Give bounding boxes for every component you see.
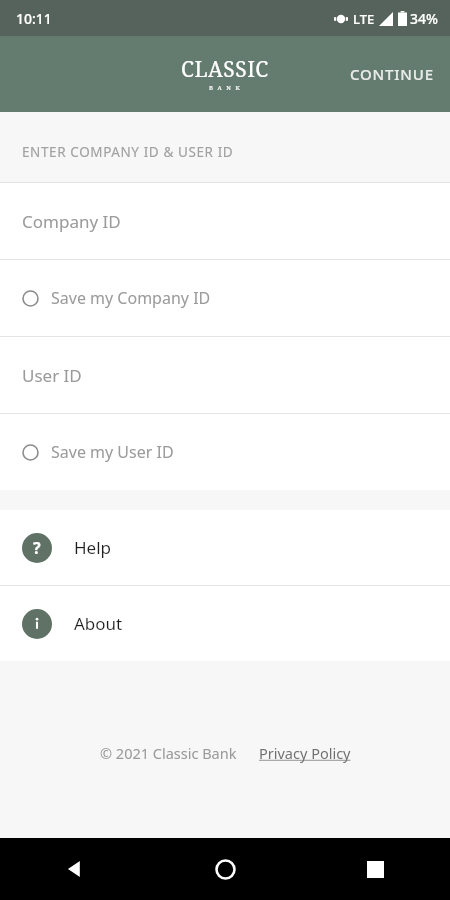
button[interactable]: Back bbox=[0, 838, 150, 900]
staticText: Save my User ID bbox=[51, 441, 174, 463]
button[interactable]: User ID bbox=[0, 337, 450, 413]
button[interactable]: Help bbox=[0, 510, 450, 585]
staticText: Help bbox=[74, 536, 112, 559]
staticText: ENTER COMPANY ID & USER ID bbox=[22, 143, 234, 161]
staticText: User ID bbox=[22, 364, 82, 387]
button[interactable]: Save my Company ID bbox=[0, 260, 450, 336]
button[interactable]: Home bbox=[150, 838, 300, 900]
staticText: CLASSIC bbox=[181, 55, 269, 84]
staticText: © 2021 Classic Bank bbox=[100, 743, 237, 763]
button[interactable]: CONTINUE bbox=[334, 50, 450, 98]
button[interactable]: Privacy Policy bbox=[259, 743, 351, 763]
staticText: 10:11 bbox=[16, 9, 52, 28]
staticText: Privacy Policy bbox=[259, 743, 351, 763]
staticText: CONTINUE bbox=[350, 64, 434, 84]
button[interactable]: Save my User ID bbox=[0, 414, 450, 490]
button[interactable]: Recent apps bbox=[300, 838, 450, 900]
staticText: LTE bbox=[353, 10, 375, 28]
button[interactable]: Company ID bbox=[0, 183, 450, 259]
other: About bbox=[22, 609, 52, 639]
staticText: About bbox=[74, 612, 123, 635]
staticText: Save my Company ID bbox=[51, 287, 211, 309]
staticText: Company ID bbox=[22, 210, 121, 233]
button[interactable]: About bbox=[0, 586, 450, 661]
staticText: B A N K bbox=[209, 84, 242, 92]
other: Help bbox=[22, 533, 52, 563]
staticText: ? bbox=[33, 537, 41, 559]
staticText: 34% bbox=[410, 9, 438, 28]
